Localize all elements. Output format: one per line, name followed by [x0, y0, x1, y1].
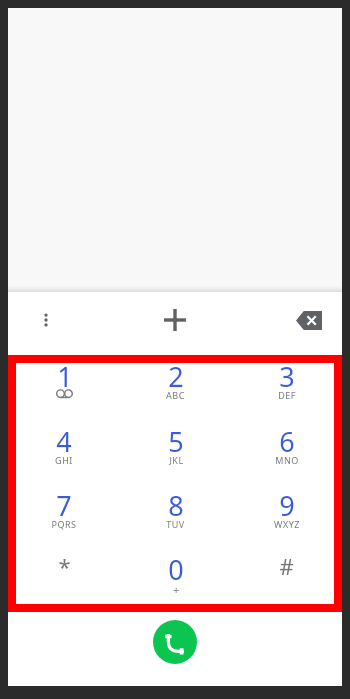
staticText: 9 — [279, 487, 295, 517]
staticText: PQRS — [51, 518, 77, 530]
button[interactable]: 3 — [231, 347, 342, 412]
staticText: JKL — [169, 454, 184, 466]
button[interactable]: 6 — [231, 412, 342, 476]
button[interactable]: 4 — [8, 412, 120, 476]
staticText: 4 — [56, 423, 72, 453]
button[interactable]: More options — [24, 298, 68, 342]
button[interactable]: 5 — [120, 412, 231, 476]
staticText: 2 — [168, 358, 184, 388]
staticText: DEF — [278, 389, 296, 401]
button[interactable]: 2 — [120, 347, 231, 412]
staticText: + — [173, 582, 180, 594]
button[interactable]: Call — [153, 620, 197, 664]
staticText: 7 — [56, 487, 72, 517]
button[interactable]: * — [8, 540, 120, 604]
staticText: TUV — [166, 518, 185, 530]
staticText: ABC — [166, 389, 185, 401]
staticText: GHI — [55, 454, 73, 466]
button[interactable]: 7 — [8, 476, 120, 540]
staticText: 0 — [168, 551, 184, 581]
button[interactable]: 9 — [231, 476, 342, 540]
button[interactable]: # — [231, 540, 342, 604]
button[interactable]: Add — [151, 296, 199, 344]
button[interactable]: 1 — [8, 347, 120, 412]
staticText: 1 — [57, 358, 73, 388]
staticText: 8 — [168, 487, 184, 517]
button[interactable]: Backspace — [286, 297, 332, 343]
staticText: 6 — [279, 423, 295, 453]
staticText: # — [279, 551, 294, 581]
button[interactable]: 0 — [120, 540, 231, 604]
staticText: 3 — [279, 358, 295, 388]
staticText: * — [58, 551, 71, 581]
staticText: 5 — [168, 423, 184, 453]
staticText: MNO — [275, 454, 299, 466]
button[interactable]: 8 — [120, 476, 231, 540]
staticText: WXYZ — [274, 518, 300, 530]
